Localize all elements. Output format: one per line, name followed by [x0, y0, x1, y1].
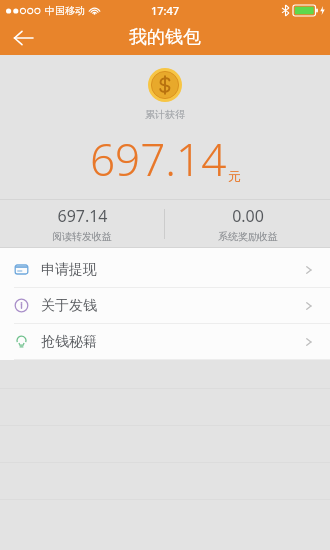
staticText: 17:47: [151, 3, 180, 18]
staticText: 697.14: [90, 129, 227, 189]
staticText: 抢钱秘籍: [41, 333, 97, 351]
staticText: 0.00: [232, 205, 264, 227]
staticText: 累计获得: [145, 108, 185, 121]
button[interactable]: 抢钱秘籍: [0, 324, 330, 359]
staticText: 系统奖励收益: [218, 230, 278, 243]
staticText: 我的钱包: [129, 26, 201, 49]
button[interactable]: 申请提现: [0, 252, 330, 287]
staticText: 关于发钱: [41, 297, 97, 315]
button[interactable]: 关于发钱: [0, 288, 330, 323]
button[interactable]: Back: [6, 21, 40, 55]
staticText: 申请提现: [41, 261, 97, 279]
staticText: 阅读转发收益: [52, 230, 112, 243]
staticText: 元: [228, 168, 241, 184]
staticText: 697.14: [57, 205, 108, 227]
staticText: 中国移动: [45, 4, 85, 17]
